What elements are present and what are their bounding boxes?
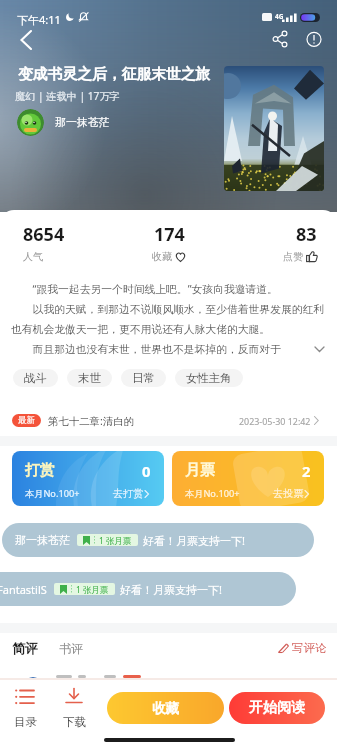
staticText: 简评 <box>12 640 38 656</box>
staticText: 那一抹苍茫 <box>15 533 70 547</box>
button[interactable]: 174 <box>109 222 229 263</box>
staticText: 好看！月票支持一下! <box>120 582 222 597</box>
staticText: “跟我一起去另一个时间线上吧。”女孩向我邀请道。 以我的天赋，到那边不说顺风顺水… <box>11 281 325 357</box>
button[interactable]: 收藏 <box>107 692 224 724</box>
staticText: 打赏 <box>25 461 55 480</box>
staticText: 4G <box>275 12 284 21</box>
button[interactable]: Share <box>266 25 294 53</box>
button[interactable]: 写评论 <box>275 636 329 660</box>
staticText: 人气 <box>23 250 43 263</box>
staticText: 末世 <box>78 371 101 385</box>
button[interactable]: 开始阅读 <box>229 692 325 724</box>
button[interactable]: 书评 <box>53 636 89 660</box>
staticText: 战斗 <box>24 371 47 385</box>
staticText: 月票 <box>185 461 215 480</box>
staticText: 开始阅读 <box>249 699 305 717</box>
staticText: 0 <box>142 461 151 481</box>
button[interactable]: 目录 <box>6 686 44 729</box>
staticText: 日常 <box>132 371 155 385</box>
staticText: 下午4:11 <box>17 12 61 27</box>
button[interactable]: 女性主角 <box>175 369 243 387</box>
staticText: 变成书灵之后，征服末世之旅 <box>18 65 211 84</box>
button[interactable]: FantastilS <box>0 572 296 606</box>
button[interactable]: 下载 <box>55 686 93 729</box>
button[interactable]: 简评 <box>6 636 44 660</box>
staticText: 2023-05-30 12:42 <box>239 415 311 427</box>
staticText: 2 <box>302 461 311 481</box>
button[interactable]: Info <box>300 25 328 53</box>
staticText: 收藏 <box>152 250 172 263</box>
staticText: 最新 <box>18 415 35 426</box>
staticText: 女性主角 <box>186 371 232 385</box>
button[interactable]: 战斗 <box>13 369 58 387</box>
staticText: 1 张月票 <box>76 584 109 595</box>
staticText: 去打赏 <box>113 487 144 500</box>
button[interactable]: 打赏 <box>12 451 164 506</box>
staticText: 174 <box>154 222 185 247</box>
button[interactable]: 那一抹苍茫 <box>2 523 314 557</box>
staticText: 目录 <box>14 715 37 729</box>
button[interactable]: Expand description <box>310 340 329 358</box>
button[interactable] <box>224 66 324 191</box>
button[interactable] <box>0 660 337 678</box>
button[interactable]: 83 <box>197 222 317 263</box>
staticText: 下载 <box>63 715 86 729</box>
staticText: 魔幻 | 连载中 | 17万字 <box>15 89 120 103</box>
button[interactable]: 日常 <box>121 369 166 387</box>
button[interactable] <box>17 109 44 136</box>
staticText: 1 张月票 <box>99 535 132 546</box>
staticText: 那一抹苍茫 <box>55 116 110 130</box>
staticText: 第七十二章:清白的 <box>48 414 134 428</box>
staticText: 点赞 <box>283 250 303 263</box>
staticText: 去投票 <box>273 487 304 500</box>
staticText: 收藏 <box>152 700 179 717</box>
staticText: 好看！月票支持一下! <box>143 533 245 548</box>
button[interactable]: 8654 <box>23 222 65 263</box>
staticText: FantastilS <box>0 582 47 597</box>
button[interactable]: Back <box>10 24 43 56</box>
staticText: 写评论 <box>292 641 327 655</box>
staticText: 8654 <box>23 222 65 247</box>
staticText: 本月No.100+ <box>25 487 80 500</box>
button[interactable]: 末世 <box>67 369 112 387</box>
staticText: 83 <box>296 222 317 247</box>
staticText: 本月No.100+ <box>185 487 240 500</box>
button[interactable]: 月票 <box>172 451 324 506</box>
button[interactable]: 最新 <box>0 400 337 435</box>
staticText: 书评 <box>59 641 83 656</box>
